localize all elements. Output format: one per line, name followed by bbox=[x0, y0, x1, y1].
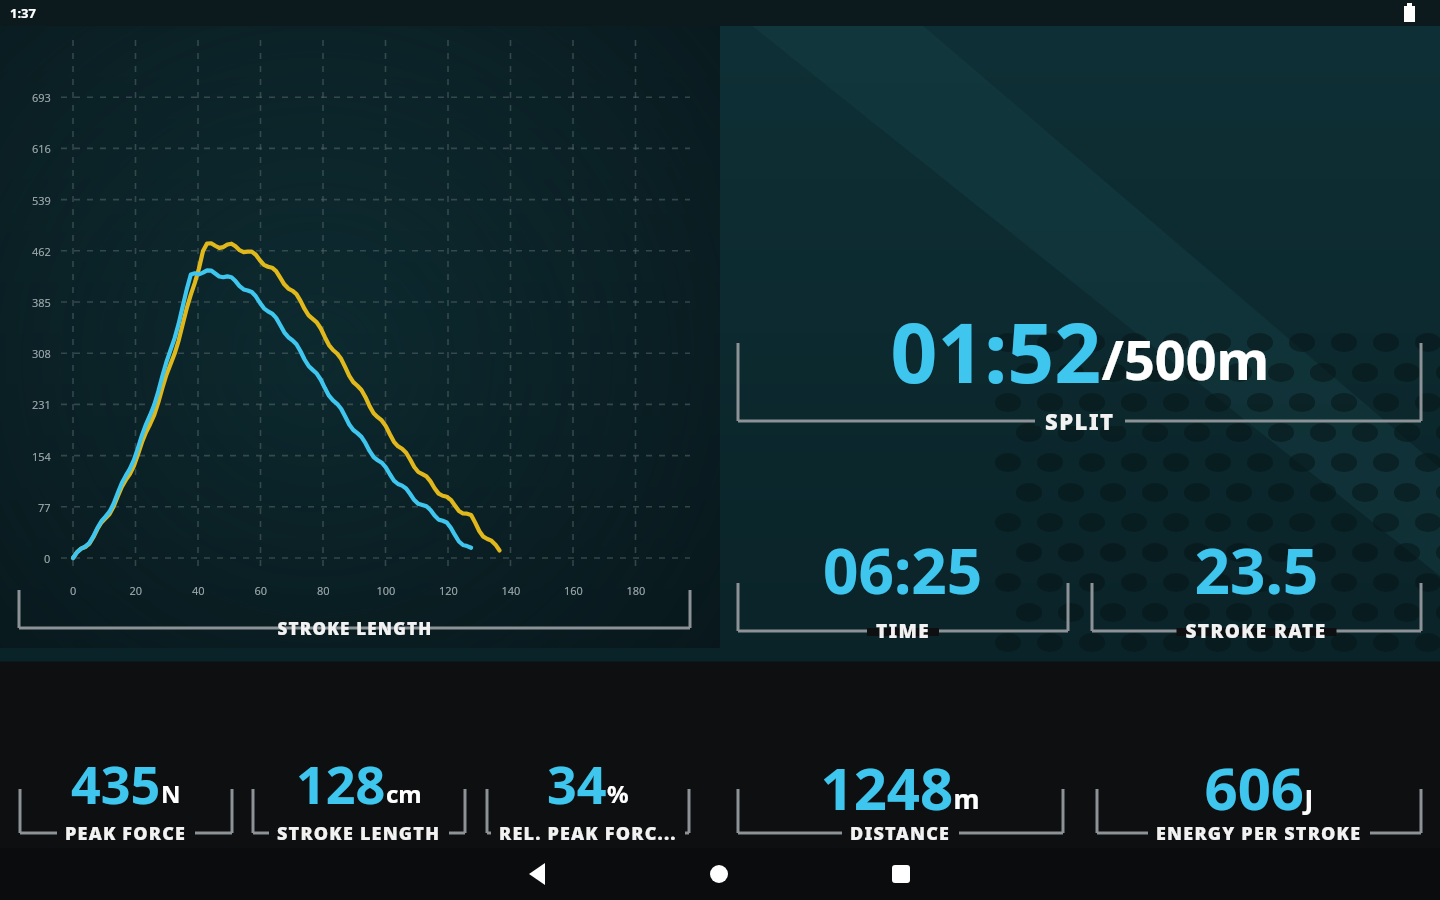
button[interactable]: Time 06:25 bbox=[738, 520, 1068, 640]
button[interactable]: Stroke length chart bbox=[18, 20, 698, 640]
button[interactable]: Back bbox=[488, 850, 588, 900]
button[interactable]: Stroke length 128 cm bbox=[253, 740, 465, 845]
button[interactable]: Relative peak force 34 percent bbox=[487, 740, 689, 845]
button[interactable]: Home bbox=[670, 850, 770, 900]
button[interactable]: Split 01:52 per 500m bbox=[738, 300, 1422, 440]
button[interactable]: Recents bbox=[852, 850, 952, 900]
button[interactable]: Stroke rate 23.5 bbox=[1092, 520, 1422, 640]
button[interactable]: Distance 1248 m bbox=[738, 740, 1063, 845]
button[interactable]: Peak force 435 N bbox=[20, 740, 232, 845]
button[interactable]: Energy per stroke 606 J bbox=[1097, 740, 1422, 845]
